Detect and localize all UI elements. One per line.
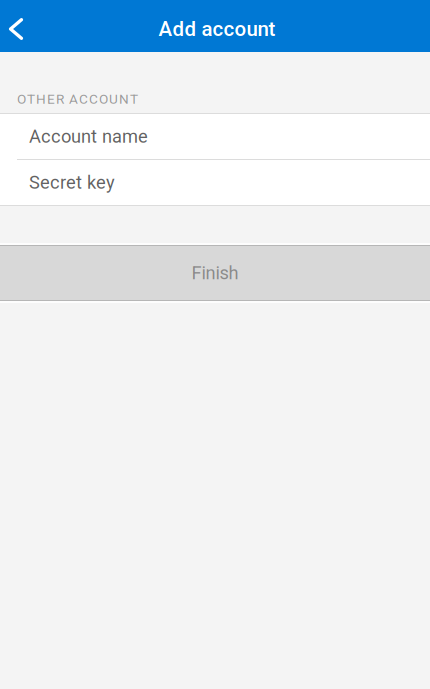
staticText: Secret key — [29, 172, 115, 193]
button[interactable]: Finish — [0, 243, 430, 303]
staticText: Account name — [29, 126, 148, 147]
staticText: Add account — [158, 17, 275, 41]
staticText: Finish — [191, 262, 238, 284]
button[interactable]: Back — [0, 0, 38, 52]
staticText: OTHER ACCOUNT — [17, 91, 138, 107]
button[interactable]: Account name — [0, 114, 430, 159]
button[interactable]: Secret key — [0, 160, 430, 205]
